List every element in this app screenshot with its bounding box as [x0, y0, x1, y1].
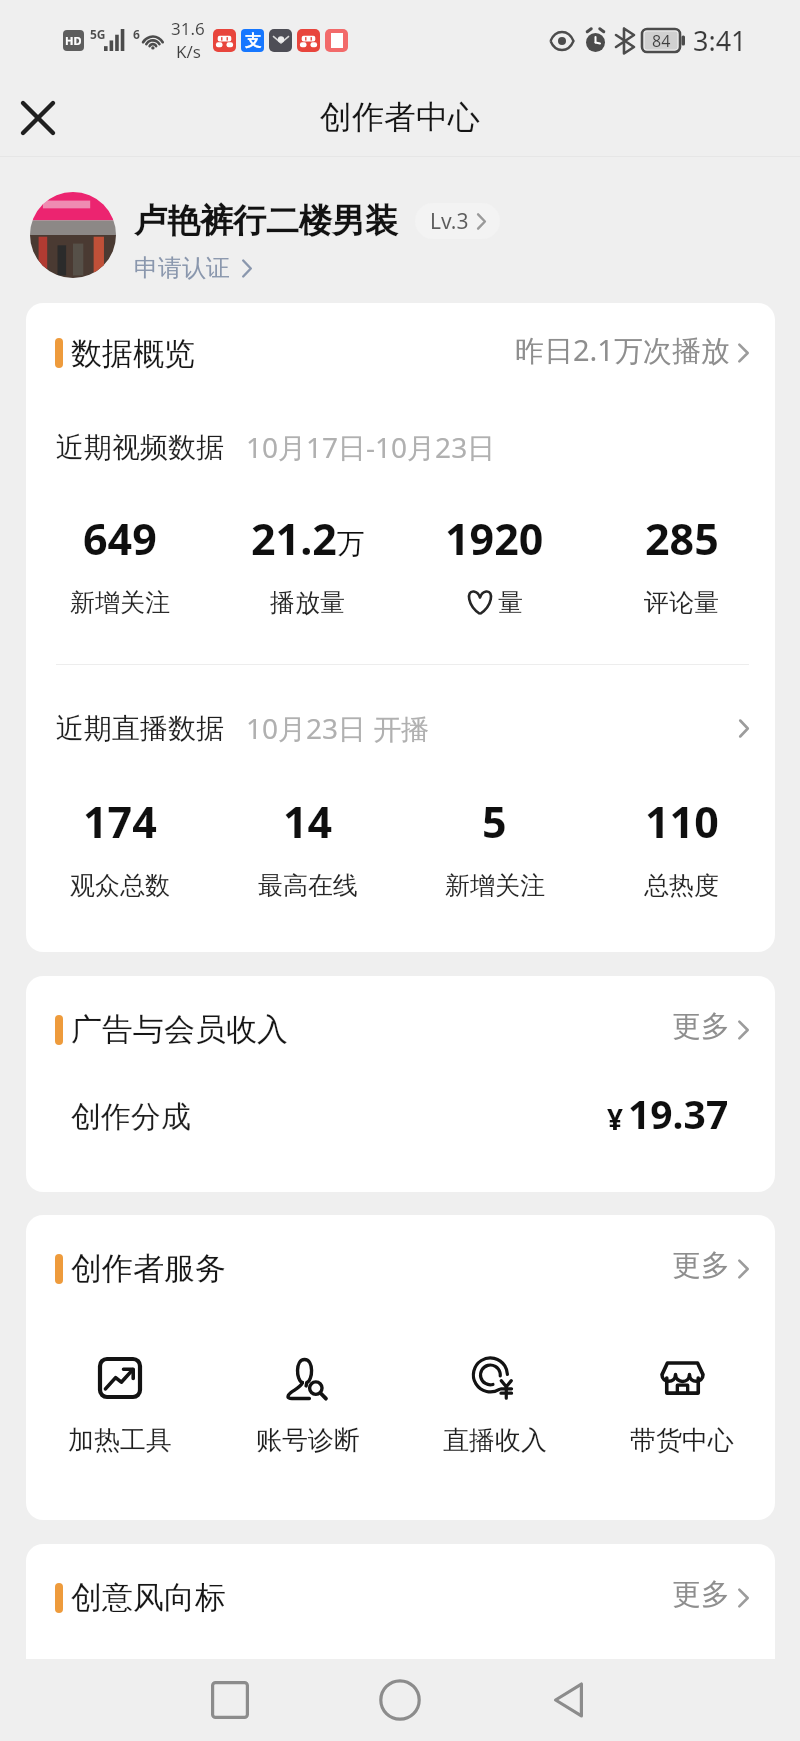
staticText: 带货中心	[630, 1424, 734, 1457]
button[interactable]: Close	[12, 92, 64, 144]
button[interactable]: 创作者服务	[26, 1249, 775, 1288]
staticText: 量	[498, 587, 523, 618]
staticText: 创作者中心	[320, 97, 480, 137]
staticText: 观众总数	[70, 870, 170, 901]
button[interactable]: 带货中心	[588, 1355, 775, 1457]
button[interactable]: Lv.3	[415, 203, 500, 239]
staticText: 285	[645, 509, 719, 568]
staticText: 评论量	[644, 587, 719, 618]
button[interactable]: Back	[485, 1665, 655, 1735]
staticText: 加热工具	[68, 1424, 172, 1457]
staticText: 直播收入	[443, 1424, 547, 1457]
button[interactable]: 账号诊断	[214, 1355, 401, 1457]
staticText: 174	[83, 792, 157, 851]
staticText: 昨日2.1万次播放	[515, 330, 730, 370]
staticText: HD	[65, 33, 82, 48]
staticText: 31.6	[171, 17, 205, 40]
staticText: K/s	[176, 40, 201, 63]
staticText: 广告与会员收入	[71, 1010, 288, 1049]
staticText: 创作分成	[71, 1098, 191, 1136]
staticText: 649	[83, 509, 157, 568]
button[interactable]: 卢艳裤行二楼男装	[0, 157, 800, 303]
staticText: 84	[652, 30, 671, 52]
staticText: 新增关注	[445, 870, 545, 901]
staticText: 3:41	[693, 22, 747, 59]
button[interactable]: Home	[315, 1665, 485, 1735]
staticText: 申请认证	[134, 253, 230, 283]
staticText: 更多	[672, 1247, 730, 1284]
staticText: 5G	[90, 26, 106, 42]
staticText: 21.2	[251, 509, 337, 568]
button[interactable]: 近期直播数据	[26, 709, 775, 747]
staticText: 6	[133, 26, 140, 42]
button[interactable]: Recents	[145, 1665, 315, 1735]
staticText: 10月17日-10月23日	[246, 428, 496, 466]
staticText: 创意风向标	[71, 1578, 226, 1617]
staticText: 新增关注	[70, 587, 170, 618]
staticText: 5	[482, 792, 507, 851]
staticText: 总热度	[644, 870, 719, 901]
button[interactable]: 数据概览	[26, 333, 775, 373]
button[interactable]: 申请认证	[134, 253, 252, 283]
button[interactable]: 加热工具	[26, 1355, 214, 1457]
button[interactable]: 创意风向标	[26, 1578, 775, 1617]
staticText: 最高在线	[258, 870, 358, 901]
staticText: 近期视频数据	[56, 430, 224, 465]
staticText: 支	[245, 31, 261, 51]
staticText: 数据概览	[71, 334, 195, 373]
staticText: 创作者服务	[71, 1249, 226, 1288]
staticText: 万	[337, 526, 365, 561]
button[interactable]: 广告与会员收入	[26, 1010, 775, 1049]
staticText: 1920	[445, 509, 544, 568]
staticText: 播放量	[270, 587, 345, 618]
staticText: 110	[645, 792, 719, 851]
staticText: 14	[283, 792, 333, 851]
staticText: Lv.3	[430, 207, 469, 236]
staticText: 10月23日 开播	[246, 709, 430, 747]
staticText: 卢艳裤行二楼男装	[134, 200, 398, 242]
staticText: 更多	[672, 1576, 730, 1613]
staticText: 账号诊断	[256, 1424, 360, 1457]
staticText: 更多	[672, 1008, 730, 1045]
staticText: 近期直播数据	[56, 711, 224, 746]
staticText: 19.37	[628, 1087, 729, 1140]
button[interactable]: 直播收入	[401, 1355, 588, 1457]
staticText: ¥	[607, 1100, 624, 1138]
